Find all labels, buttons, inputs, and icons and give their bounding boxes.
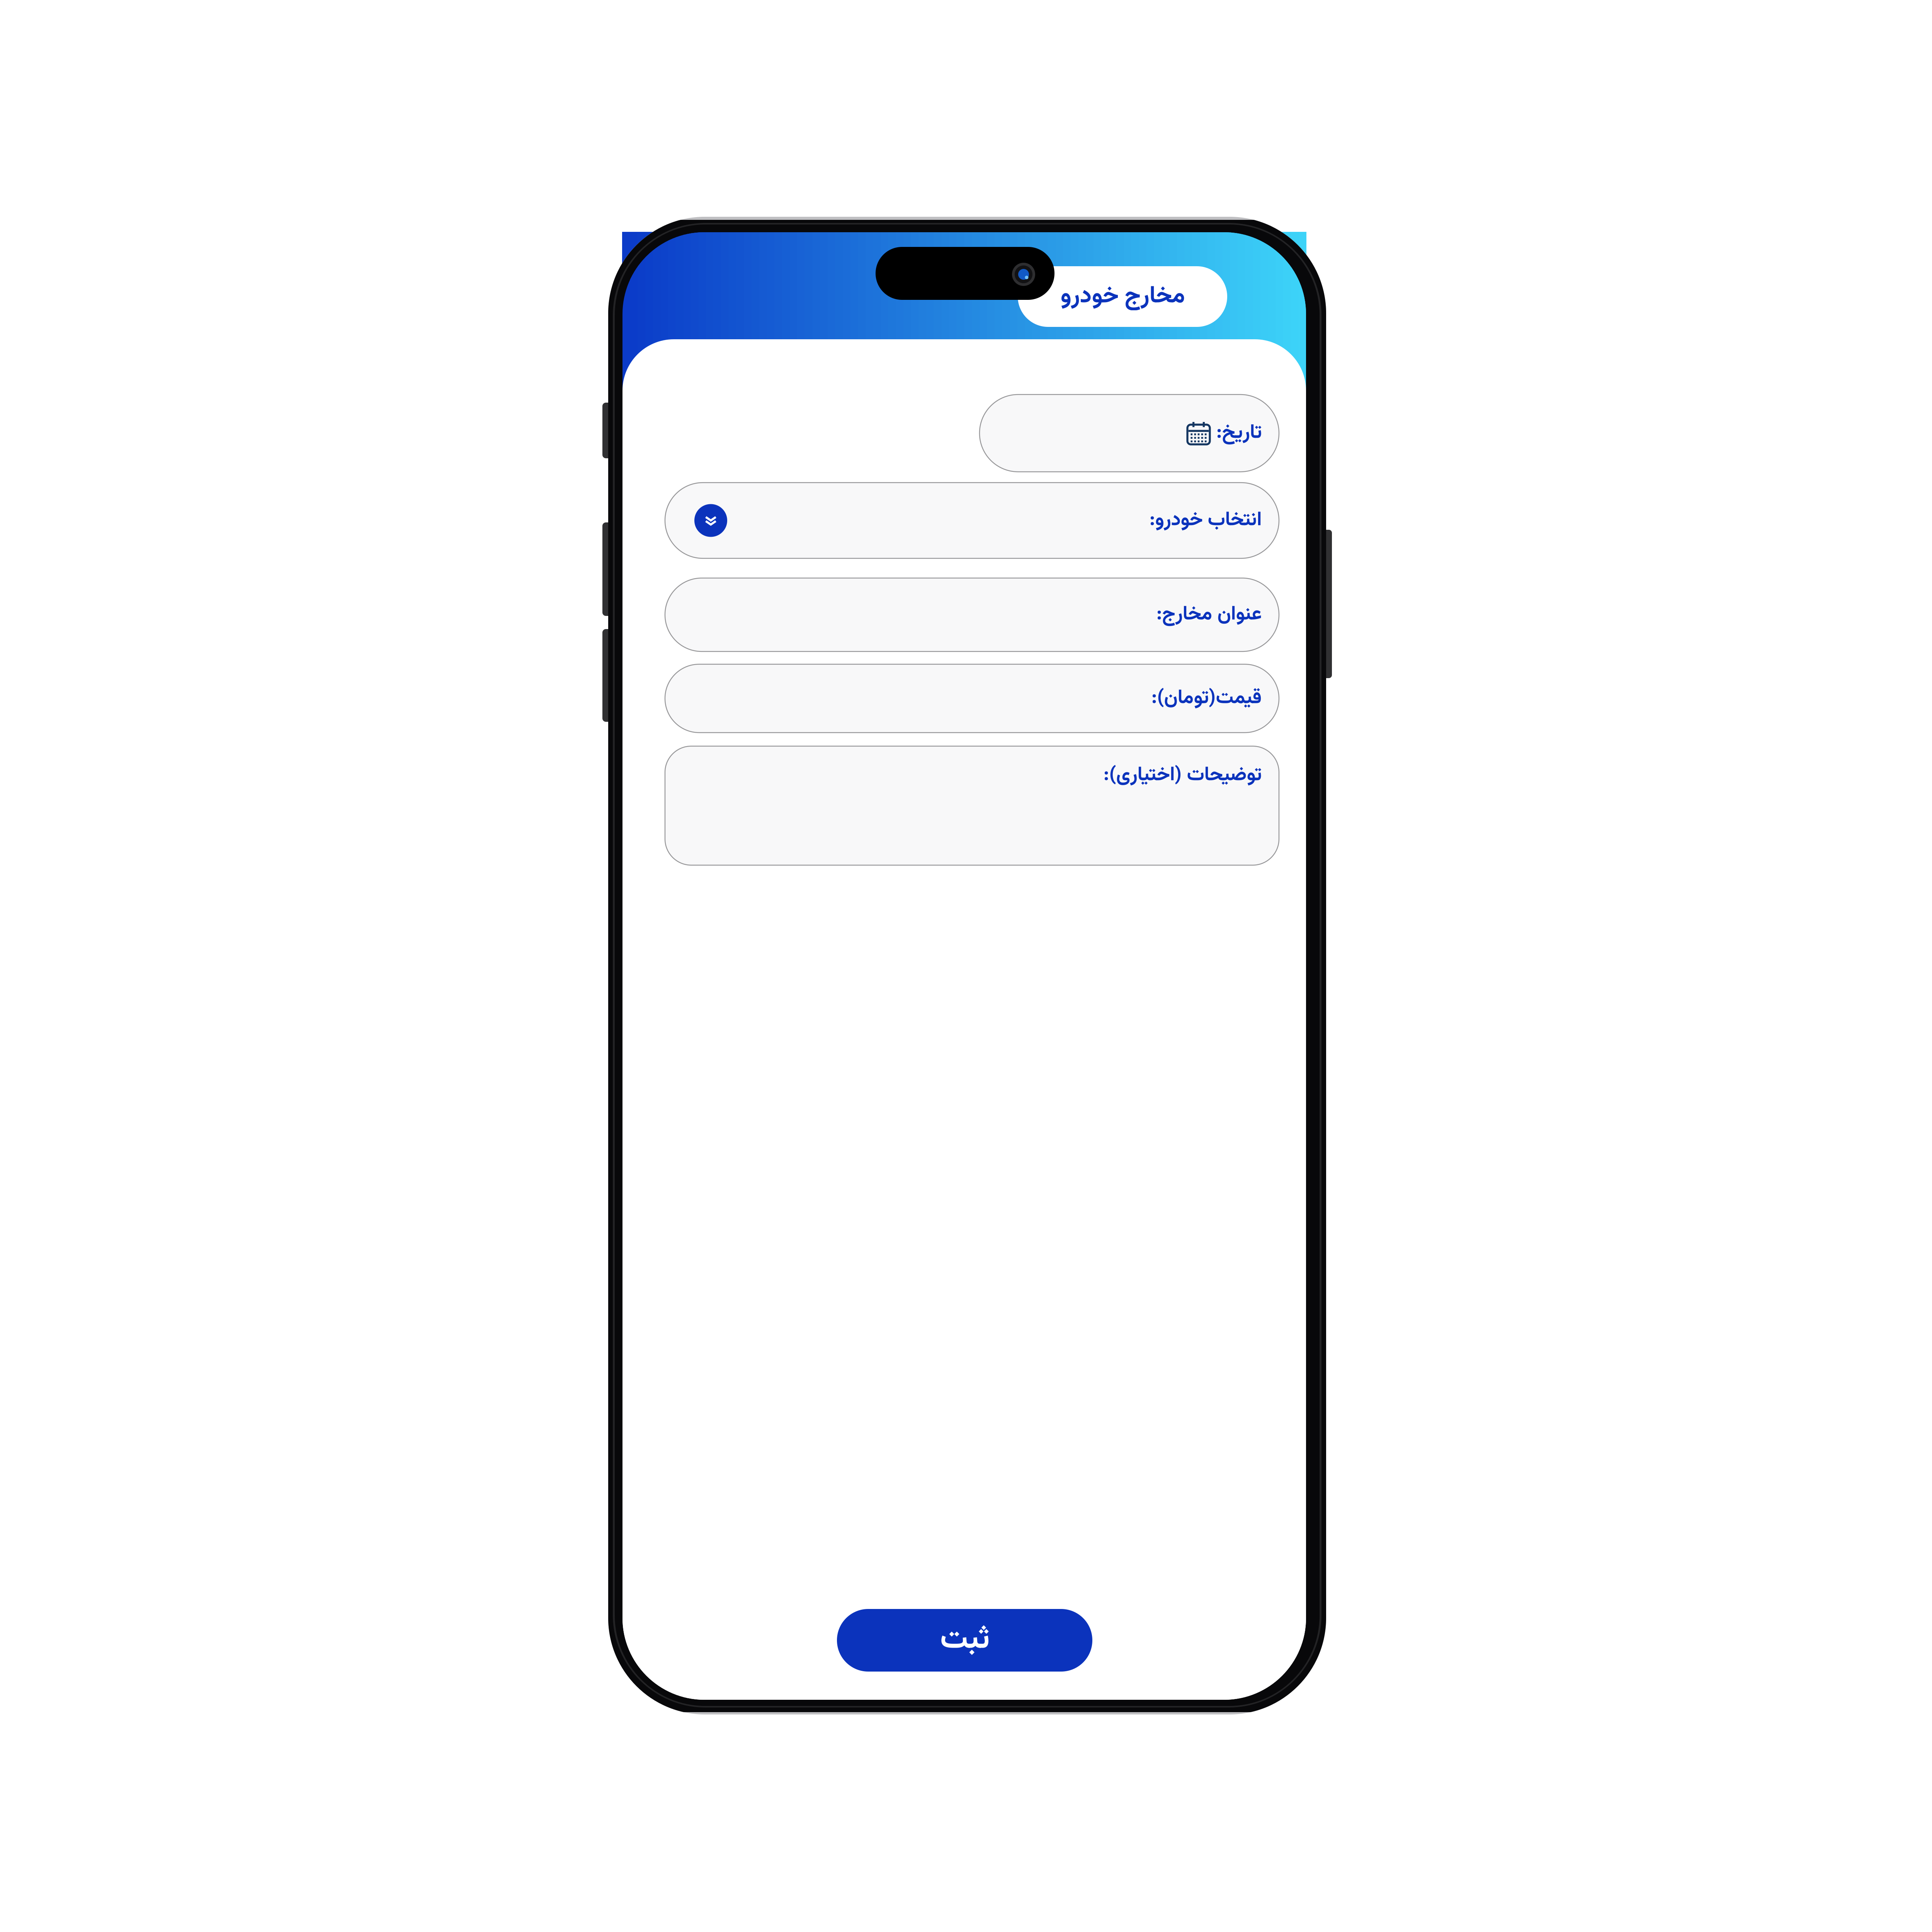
button[interactable]: تاریخ	[980, 395, 1279, 472]
staticText: مخارج خودرو	[1060, 278, 1185, 315]
button[interactable]: ثبت	[837, 1609, 1092, 1672]
button[interactable]: عنوان مخارج:	[665, 578, 1279, 651]
staticText: عنوان مخارج:	[1156, 599, 1262, 630]
staticText: انتخاب خودرو:	[1149, 505, 1262, 536]
staticText: ثبت	[940, 1616, 989, 1664]
staticText: تاریخ:	[1216, 418, 1262, 448]
staticText: توضیحات (اختیاری):	[1103, 760, 1262, 791]
staticText: قیمت(تومان):	[1151, 683, 1262, 714]
button[interactable]: توضیحات (اختیاری):	[665, 746, 1279, 865]
button[interactable]: مخارج خودرو	[1018, 266, 1227, 327]
button[interactable]: انتخاب خودرو	[665, 483, 1279, 558]
button[interactable]: قیمت(تومان):	[665, 664, 1279, 733]
